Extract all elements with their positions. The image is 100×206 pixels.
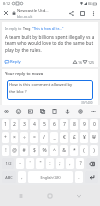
button[interactable]: Share	[66, 8, 77, 19]
staticText: '	[29, 160, 31, 167]
staticText: 7	[63, 121, 66, 128]
button[interactable]: "	[36, 158, 44, 169]
button[interactable]: 4	[30, 119, 38, 130]
button[interactable]: 7	[60, 119, 68, 130]
staticText: 8	[73, 121, 76, 128]
staticText: @	[12, 147, 17, 154]
staticText: 8:12	[3, 1, 11, 6]
button[interactable]: :	[46, 158, 54, 169]
button[interactable]: Translate	[36, 105, 48, 118]
button[interactable]: 1	[2, 119, 9, 130]
button[interactable]: .	[75, 171, 83, 183]
staticText: !	[5, 147, 7, 154]
button[interactable]: English (UK)	[28, 171, 73, 183]
button[interactable]: Emoji	[12, 105, 24, 118]
button[interactable]: GIF	[24, 105, 36, 118]
button[interactable]: 5	[40, 119, 48, 130]
staticText: ,	[69, 160, 71, 167]
button[interactable]: Back	[72, 189, 86, 203]
button[interactable]: #	[20, 145, 28, 156]
button[interactable]: ?	[76, 158, 84, 169]
button[interactable]: '	[26, 158, 34, 169]
button[interactable]: Clipboard	[48, 105, 61, 118]
button[interactable]: =	[30, 132, 38, 143]
button[interactable]: ÷	[20, 132, 28, 143]
staticText: 5	[43, 121, 46, 128]
button[interactable]: More	[87, 105, 100, 118]
button[interactable]: Tabs	[77, 8, 88, 19]
button[interactable]: More options	[88, 8, 99, 19]
button[interactable]: £	[70, 132, 78, 143]
button[interactable]: 2	[11, 119, 18, 130]
button[interactable]: Enter	[85, 171, 98, 183]
staticText: 2	[13, 121, 16, 128]
staticText: How is this comment allowed by the bbc ?	[9, 82, 73, 94]
button[interactable]: )	[90, 145, 98, 156]
button[interactable]: ;	[56, 158, 64, 169]
button[interactable]: ×	[11, 132, 18, 143]
staticText: €	[63, 134, 66, 141]
staticText: ;	[59, 160, 61, 167]
staticText: *	[73, 147, 76, 154]
button[interactable]: Reply	[5, 59, 21, 65]
button[interactable]: ,	[18, 171, 26, 183]
staticText: Reply	[10, 59, 21, 65]
staticText: #	[22, 147, 26, 154]
button[interactable]: _	[50, 132, 58, 143]
button[interactable]: %	[40, 145, 48, 156]
staticText: 1/2	[5, 161, 12, 166]
button[interactable]: 8	[70, 119, 78, 130]
button[interactable]: !	[2, 145, 9, 156]
button[interactable]: €	[60, 132, 68, 143]
button[interactable]: &	[60, 145, 68, 156]
staticText: -	[19, 160, 21, 167]
button[interactable]: 3	[20, 119, 28, 130]
staticText: +	[4, 134, 7, 141]
staticText: 39/1400	[81, 101, 93, 105]
staticText: In reply to	[5, 26, 23, 31]
button[interactable]: Recent apps	[14, 189, 28, 203]
button[interactable]: Settings	[74, 105, 87, 118]
button[interactable]: 6	[50, 119, 58, 130]
button[interactable]: 9	[80, 119, 88, 130]
staticText: ₩	[92, 134, 96, 141]
button[interactable]: -	[16, 158, 24, 169]
staticText: ABC	[5, 175, 13, 180]
button[interactable]: ₩	[90, 132, 98, 143]
staticText: 125	[87, 60, 95, 65]
staticText: $	[33, 147, 36, 154]
button[interactable]: 1/2	[2, 158, 14, 169]
staticText: 84	[88, 2, 92, 6]
button[interactable]: 0	[90, 119, 98, 130]
button[interactable]: ABC	[2, 171, 16, 183]
staticText: Your reply to nozza	[5, 71, 44, 77]
staticText: %	[42, 147, 47, 154]
staticText: &	[62, 147, 66, 154]
button[interactable]: ¥	[80, 132, 88, 143]
staticText: 16	[77, 60, 83, 65]
staticText: 1	[4, 121, 7, 128]
staticText: Trog	[23, 26, 31, 31]
button[interactable]: ^	[50, 145, 58, 156]
staticText: bbc.co.uk	[17, 14, 33, 19]
button[interactable]: *	[70, 145, 78, 156]
button[interactable]: Backspace	[86, 158, 98, 169]
staticText: ÷	[23, 134, 26, 141]
button[interactable]: +	[2, 132, 9, 143]
button[interactable]: Voice input	[61, 105, 74, 118]
staticText: =	[33, 134, 36, 141]
staticText: 9	[83, 121, 86, 128]
staticText: "	[39, 160, 42, 167]
button[interactable]: ,	[66, 158, 74, 169]
button[interactable]: (	[80, 145, 88, 156]
button[interactable]: $	[30, 145, 38, 156]
button[interactable]: Sticker	[0, 105, 12, 118]
button[interactable]: Home	[43, 189, 57, 203]
staticText: 6	[53, 121, 56, 128]
button[interactable]: /	[40, 132, 48, 143]
staticText: :	[49, 160, 51, 167]
staticText: ^	[53, 147, 56, 154]
staticText: 4	[33, 121, 36, 128]
button[interactable]: Close	[0, 7, 12, 19]
button[interactable]: @	[11, 145, 18, 156]
